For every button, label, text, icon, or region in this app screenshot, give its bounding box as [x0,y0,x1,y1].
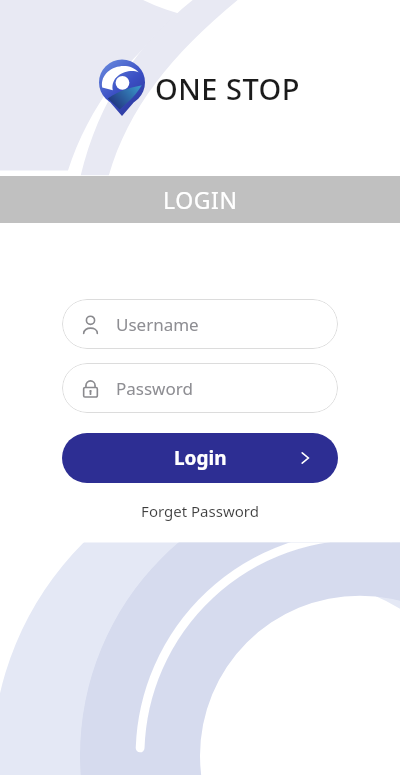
staticText: LOGIN [163,184,238,215]
staticText: ONE STOP [155,69,301,108]
button[interactable]: Username [62,299,338,349]
button[interactable]: Login [62,433,338,483]
staticText: Username [116,313,199,336]
staticText: Password [116,377,193,400]
staticText: Forget Password [141,501,259,521]
button[interactable]: Forget Password [133,499,267,523]
button[interactable]: Password [62,363,338,413]
staticText: Login [174,445,227,471]
